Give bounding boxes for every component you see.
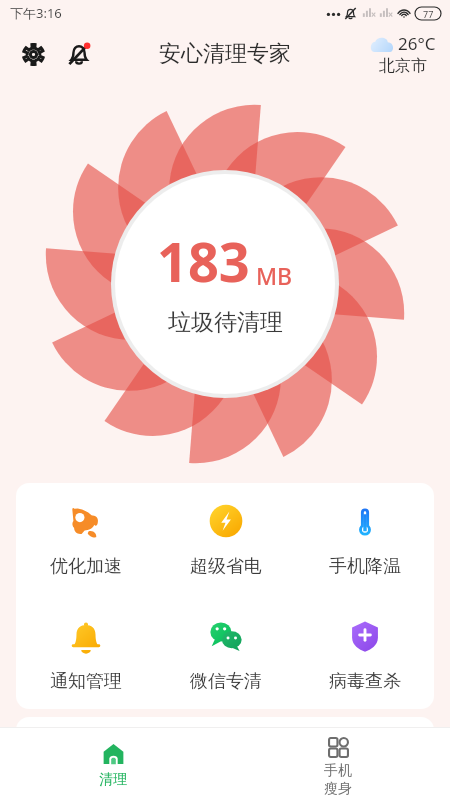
staticText: 病毒查杀 bbox=[329, 670, 401, 693]
staticText: 清理 bbox=[99, 771, 127, 789]
staticText: 微信专清 bbox=[190, 670, 262, 693]
staticText: 优化加速 bbox=[50, 555, 122, 578]
button[interactable]: 微信专清 bbox=[156, 619, 295, 693]
staticText: 手机降温 bbox=[329, 555, 401, 578]
staticText: 26°C bbox=[398, 32, 436, 55]
staticText: 安心清理专家 bbox=[159, 40, 291, 68]
staticText: 超级省电 bbox=[190, 555, 262, 578]
staticText: 垃圾待清理 bbox=[168, 308, 283, 337]
button[interactable]: 通知管理 bbox=[16, 619, 156, 693]
button[interactable]: 通知 bbox=[60, 35, 98, 73]
button[interactable]: 优化加速 bbox=[16, 504, 156, 578]
staticText: MB bbox=[256, 260, 293, 291]
button[interactable]: 病毒查杀 bbox=[295, 619, 434, 693]
staticText: 183 bbox=[157, 224, 250, 298]
button[interactable]: 手机 瘦身 bbox=[225, 728, 450, 800]
staticText: 北京市 bbox=[379, 56, 427, 76]
button[interactable]: 天气 bbox=[369, 32, 436, 76]
button[interactable]: 清理 bbox=[0, 728, 225, 800]
button[interactable]: 手机降温 bbox=[295, 504, 434, 578]
button[interactable]: 超级省电 bbox=[156, 504, 295, 578]
button[interactable]: 设置 bbox=[14, 35, 52, 73]
staticText: 手机 瘦身 bbox=[324, 762, 352, 797]
staticText: 下午3:16 bbox=[10, 4, 62, 22]
button[interactable]: 183 bbox=[115, 174, 335, 394]
staticText: 通知管理 bbox=[50, 670, 122, 693]
staticText: 77 bbox=[423, 8, 434, 20]
